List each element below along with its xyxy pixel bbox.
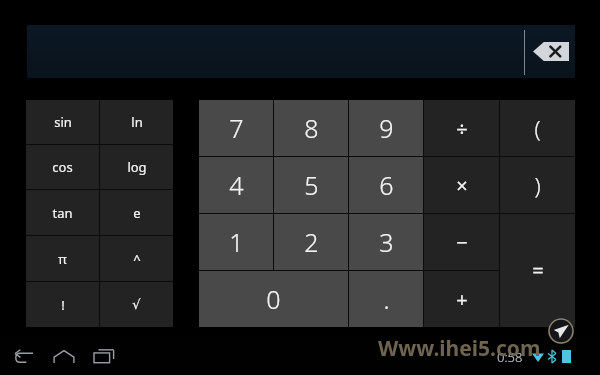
staticText: π xyxy=(58,250,67,268)
button[interactable]: log xyxy=(100,145,173,189)
button[interactable]: 8 xyxy=(274,100,348,156)
button[interactable]: ÷ xyxy=(424,100,499,156)
staticText: 8 xyxy=(304,111,319,145)
staticText: ÷ xyxy=(456,115,468,142)
button[interactable]: 0 xyxy=(199,271,348,327)
staticText: 7 xyxy=(229,111,244,145)
button[interactable]: . xyxy=(349,271,423,327)
button[interactable]: Recent apps xyxy=(88,346,120,366)
staticText: 4 xyxy=(229,168,244,202)
staticText: √ xyxy=(132,297,141,312)
staticText: ) xyxy=(534,170,541,200)
button[interactable]: 3 xyxy=(349,214,423,270)
button[interactable]: × xyxy=(424,157,499,213)
staticText: 1 xyxy=(229,225,244,259)
button[interactable]: Backspace xyxy=(27,25,575,78)
staticText: 2 xyxy=(304,225,319,259)
button[interactable]: ( xyxy=(500,100,575,156)
staticText: 0:58 xyxy=(497,348,523,366)
staticText: ! xyxy=(61,296,65,314)
staticText: Www.ihei5.com xyxy=(378,334,541,363)
button[interactable]: − xyxy=(424,214,499,270)
button[interactable]: Back xyxy=(8,346,40,366)
other: Watermark xyxy=(548,318,574,344)
button[interactable]: Backspace xyxy=(533,42,569,61)
button[interactable]: 7 xyxy=(199,100,273,156)
staticText: − xyxy=(456,229,468,256)
staticText: log xyxy=(127,158,147,176)
staticText: = xyxy=(532,257,544,284)
staticText: 5 xyxy=(304,168,319,202)
staticText: 3 xyxy=(379,225,394,259)
staticText: 0 xyxy=(266,282,281,316)
staticText: 9 xyxy=(379,111,394,145)
button[interactable]: ) xyxy=(500,157,575,213)
staticText: e xyxy=(133,204,141,222)
button[interactable]: 2 xyxy=(274,214,348,270)
staticText: 6 xyxy=(379,168,394,202)
button[interactable]: π xyxy=(26,236,99,281)
button[interactable]: 1 xyxy=(199,214,273,270)
button[interactable]: Home xyxy=(48,346,80,366)
staticText: × xyxy=(456,172,468,199)
staticText: sin xyxy=(54,113,72,131)
button[interactable]: tan xyxy=(26,190,99,235)
button[interactable]: cos xyxy=(26,145,99,189)
button[interactable]: 9 xyxy=(349,100,423,156)
button[interactable]: √ xyxy=(100,282,173,327)
staticText: + xyxy=(456,286,468,313)
button[interactable]: 6 xyxy=(349,157,423,213)
staticText: ^ xyxy=(133,250,141,268)
button[interactable]: ln xyxy=(100,100,173,144)
button[interactable]: e xyxy=(100,190,173,235)
staticText: tan xyxy=(52,204,73,222)
button[interactable]: + xyxy=(424,271,499,327)
button[interactable]: = xyxy=(500,214,575,327)
staticText: . xyxy=(383,282,390,316)
button[interactable]: ^ xyxy=(100,236,173,281)
button[interactable]: ! xyxy=(26,282,99,327)
button[interactable]: 5 xyxy=(274,157,348,213)
staticText: ( xyxy=(534,113,541,143)
button[interactable]: 4 xyxy=(199,157,273,213)
staticText: cos xyxy=(52,158,73,176)
button[interactable]: sin xyxy=(26,100,99,144)
staticText: ln xyxy=(131,113,143,131)
